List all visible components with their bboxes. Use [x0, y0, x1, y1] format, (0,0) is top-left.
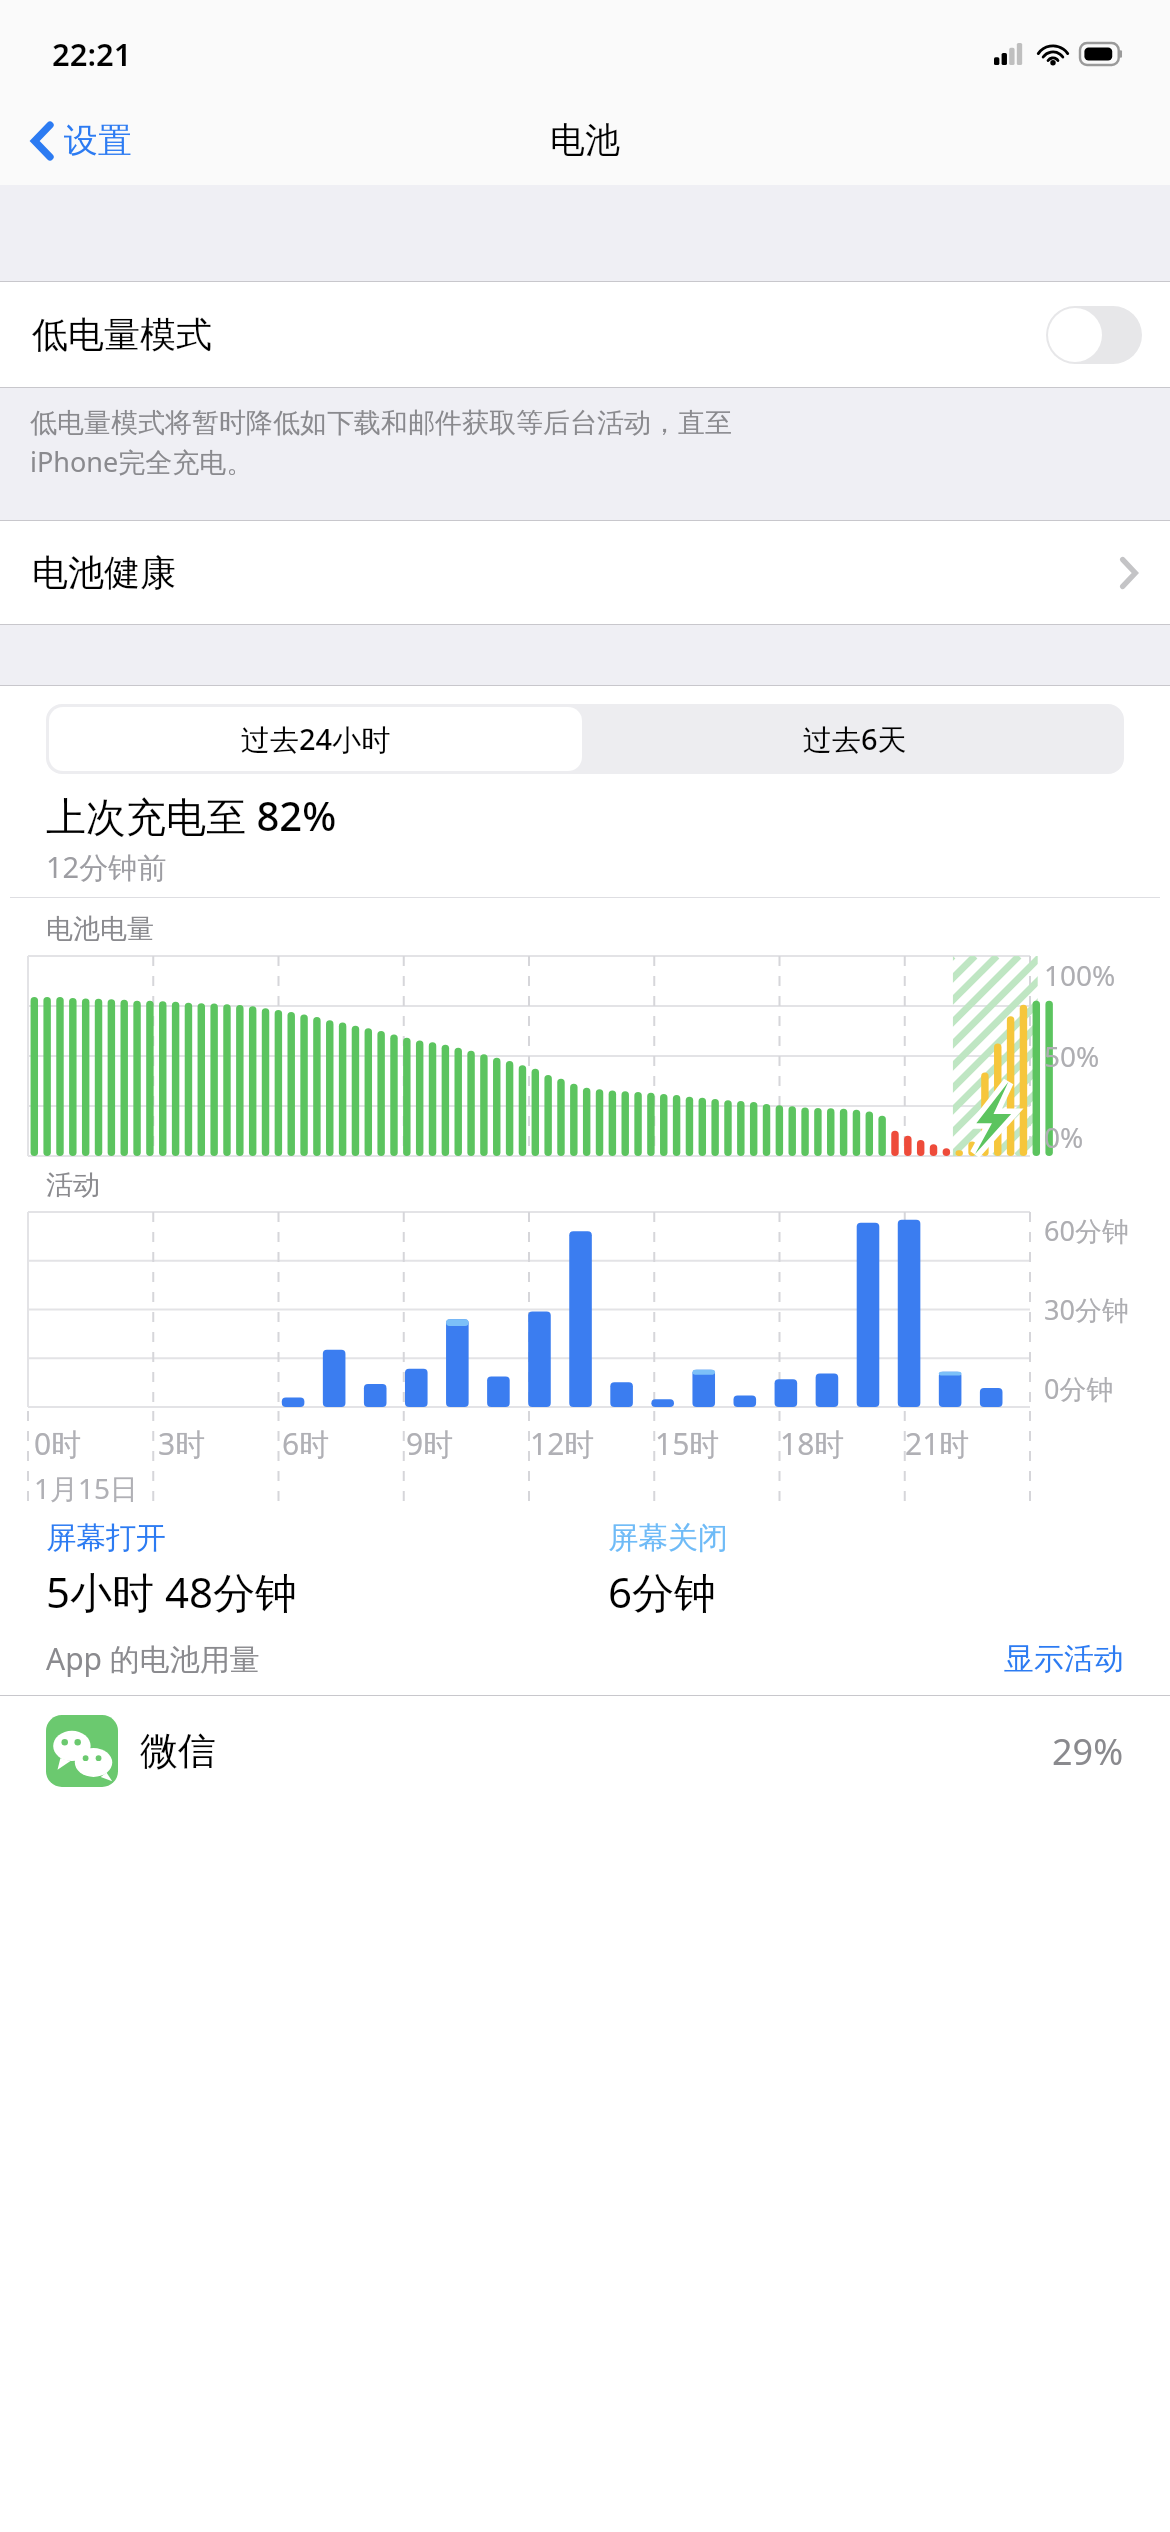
button[interactable]: 微信 — [0, 1696, 1170, 1806]
staticText: 5小时 48分钟 — [46, 1563, 297, 1620]
button[interactable]: 电池健康 — [0, 521, 1170, 624]
button[interactable]: 过去6天 — [585, 704, 1124, 774]
staticText: 上次充电至 82% — [46, 788, 337, 843]
staticText: 6分钟 — [608, 1563, 717, 1620]
staticText: 低电量模式 — [32, 312, 212, 357]
staticText: 30分钟 — [1044, 1291, 1129, 1328]
staticText: 12时 — [530, 1423, 595, 1464]
button[interactable]: 低电量模式 — [0, 282, 1170, 387]
staticText: 22:21 — [52, 33, 132, 75]
staticText: 电池 — [550, 118, 620, 162]
staticText: 0% — [1044, 1118, 1084, 1156]
staticText: 过去6天 — [803, 719, 907, 759]
staticText: 屏幕关闭 — [608, 1519, 728, 1557]
staticText: 18时 — [780, 1423, 845, 1464]
staticText: 屏幕打开 — [46, 1519, 166, 1557]
staticText: 电池电量 — [46, 912, 154, 946]
button[interactable]: Low Power Mode toggle — [1046, 306, 1142, 364]
staticText: 12分钟前 — [46, 847, 167, 887]
staticText: 设置 — [64, 119, 132, 162]
staticText: 100% — [1044, 956, 1116, 994]
staticText: 21时 — [905, 1423, 970, 1464]
staticText: 1月15日 — [34, 1469, 139, 1507]
staticText: 电池健康 — [32, 550, 176, 595]
staticText: 29% — [1052, 1727, 1124, 1776]
staticText: 低电量模式将暂时降低如下载和邮件获取等后台活动，直至 iPhone完全充电。 — [30, 406, 732, 480]
staticText: 9时 — [406, 1423, 454, 1464]
button[interactable]: 屏幕关闭 — [608, 1519, 1170, 1620]
staticText: 微信 — [140, 1727, 216, 1775]
staticText: 活动 — [46, 1168, 100, 1202]
staticText: 50% — [1044, 1037, 1100, 1075]
staticText: 15时 — [655, 1423, 720, 1464]
button[interactable]: 过去24小时 — [49, 707, 582, 771]
staticText: 过去24小时 — [241, 719, 391, 759]
staticText: 0时 — [34, 1423, 82, 1464]
staticText: App 的电池用量 — [46, 1638, 260, 1679]
button[interactable]: 屏幕打开 — [46, 1519, 608, 1620]
staticText: 显示活动 — [1004, 1640, 1124, 1678]
staticText: 3时 — [158, 1423, 206, 1464]
button[interactable]: 设置 — [24, 111, 140, 170]
staticText: 60分钟 — [1044, 1212, 1129, 1249]
button[interactable]: 显示活动 — [1004, 1640, 1124, 1678]
staticText: 6时 — [282, 1423, 330, 1464]
staticText: 0分钟 — [1044, 1370, 1114, 1407]
